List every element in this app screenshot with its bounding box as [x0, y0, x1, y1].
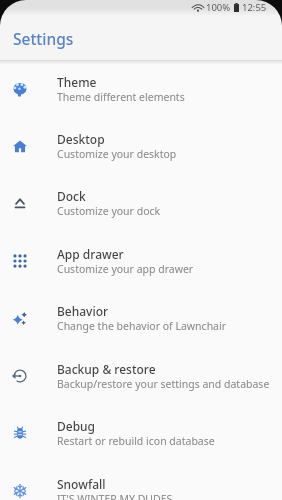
staticText: Debug: [57, 418, 96, 434]
button[interactable]: Dock: [0, 174, 282, 231]
staticText: Desktop: [57, 131, 105, 147]
staticText: Dock: [57, 188, 86, 204]
staticText: Restart or rebuild icon database: [57, 434, 215, 448]
button[interactable]: Backup & restore: [0, 347, 282, 404]
staticText: App drawer: [57, 246, 124, 262]
staticText: Backup & restore: [57, 361, 156, 377]
button[interactable]: Desktop: [0, 117, 282, 174]
staticText: Customize your desktop: [57, 147, 177, 161]
staticText: IT'S WINTER MY DUDES: [57, 492, 173, 500]
staticText: Theme: [57, 74, 97, 90]
staticText: 12:55: [242, 1, 267, 14]
button[interactable]: Behavior: [0, 289, 282, 346]
staticText: Customize your app drawer: [57, 262, 194, 276]
staticText: Backup/restore your settings and databas…: [57, 377, 270, 391]
staticText: Change the behavior of Lawnchair: [57, 319, 227, 333]
button[interactable]: Debug: [0, 404, 282, 461]
staticText: Settings: [13, 28, 74, 49]
button[interactable]: App drawer: [0, 232, 282, 289]
staticText: Theme different elements: [57, 90, 185, 104]
button[interactable]: Theme: [0, 60, 282, 117]
staticText: Snowfall: [57, 476, 106, 492]
staticText: 100%: [206, 1, 231, 14]
staticText: Behavior: [57, 303, 109, 319]
staticText: Customize your dock: [57, 204, 161, 218]
button[interactable]: Snowfall: [0, 462, 282, 500]
